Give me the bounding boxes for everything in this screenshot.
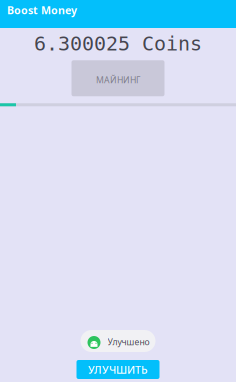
staticText: 6.300025 Coins bbox=[34, 32, 202, 55]
staticText: УЛУЧШИТЬ bbox=[88, 362, 148, 377]
staticText: Boost Money bbox=[7, 3, 77, 17]
button[interactable]: МАЙНИНГ bbox=[71, 60, 164, 96]
staticText: Улучшено bbox=[107, 336, 149, 348]
staticText: МАЙНИНГ bbox=[96, 74, 140, 86]
button[interactable]: УЛУЧШИТЬ bbox=[76, 360, 159, 379]
